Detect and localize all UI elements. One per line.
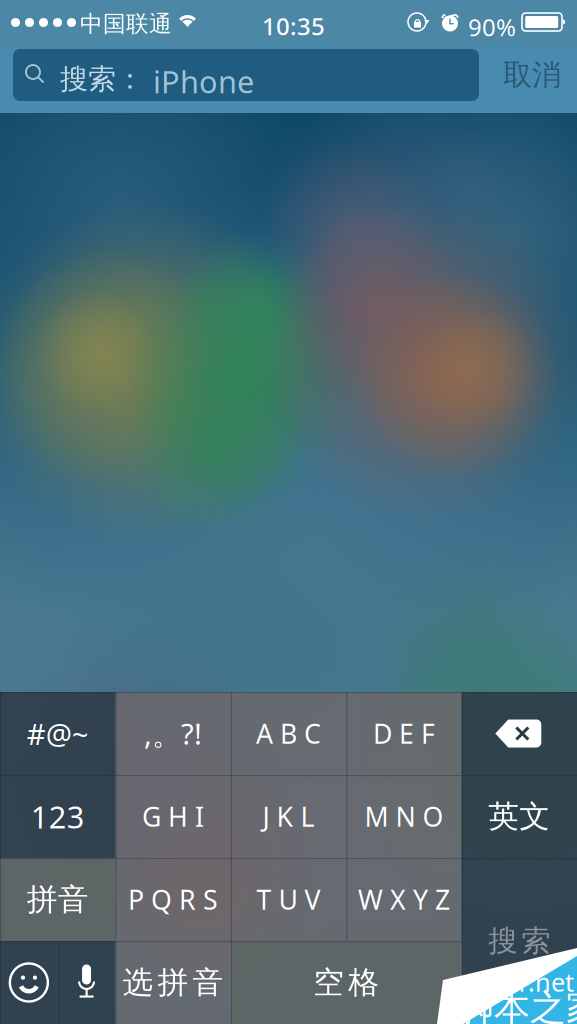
staticText: A B C bbox=[256, 716, 321, 751]
staticText: jb51.net bbox=[477, 965, 574, 999]
button[interactable]: 空 bbox=[231, 941, 462, 1024]
button[interactable]: W X Y Z bbox=[346, 858, 462, 941]
staticText: W X Y Z bbox=[358, 882, 450, 917]
button[interactable]: T U V bbox=[231, 858, 346, 941]
staticText: 90% bbox=[468, 11, 516, 43]
button[interactable]: 搜索： bbox=[13, 49, 479, 101]
staticText: D E F bbox=[373, 716, 435, 751]
staticText: 空 bbox=[313, 964, 344, 1001]
staticText: 搜 bbox=[488, 923, 517, 959]
button[interactable]: Emoji bbox=[0, 941, 58, 1024]
staticText: iPhone bbox=[153, 61, 254, 102]
button[interactable]: G H I bbox=[115, 775, 231, 858]
staticText: #@~ bbox=[27, 714, 89, 753]
staticText: 格 bbox=[348, 964, 379, 1001]
staticText: 中国联通 bbox=[80, 10, 172, 38]
staticText: 脚本之家 bbox=[458, 986, 577, 1024]
button[interactable]: 拼音 bbox=[0, 858, 115, 941]
staticText: M N O bbox=[364, 799, 443, 834]
staticText: 123 bbox=[31, 796, 85, 837]
button[interactable]: 选 bbox=[115, 941, 231, 1024]
button[interactable]: 123 bbox=[0, 775, 115, 858]
button[interactable]: A B C bbox=[231, 692, 346, 775]
button[interactable]: ,。?! bbox=[115, 692, 231, 775]
staticText: 索 bbox=[521, 923, 550, 959]
button[interactable]: Delete bbox=[462, 692, 577, 775]
button[interactable]: J K L bbox=[231, 775, 346, 858]
button[interactable]: 取消 bbox=[492, 49, 572, 101]
button[interactable]: 搜 bbox=[462, 858, 577, 1024]
staticText: P Q R S bbox=[128, 882, 218, 917]
staticText: J K L bbox=[262, 799, 314, 834]
staticText: 音 bbox=[193, 964, 224, 1001]
button[interactable]: #@~ bbox=[0, 692, 115, 775]
button[interactable]: P Q R S bbox=[115, 858, 231, 941]
button[interactable]: M N O bbox=[346, 775, 462, 858]
staticText: 选 bbox=[123, 964, 154, 1001]
staticText: 拼音 bbox=[27, 881, 89, 918]
staticText: 拼 bbox=[158, 964, 189, 1001]
staticText: T U V bbox=[256, 882, 320, 917]
staticText: 10:35 bbox=[262, 10, 325, 42]
staticText: ,。?! bbox=[144, 714, 202, 753]
staticText: 搜索： bbox=[60, 62, 144, 96]
staticText: 英文 bbox=[488, 798, 550, 835]
button[interactable]: D E F bbox=[346, 692, 462, 775]
button[interactable]: 英文 bbox=[462, 775, 577, 858]
button[interactable]: Dictation bbox=[58, 941, 115, 1024]
staticText: 取消 bbox=[503, 57, 561, 93]
staticText: G H I bbox=[142, 799, 204, 834]
